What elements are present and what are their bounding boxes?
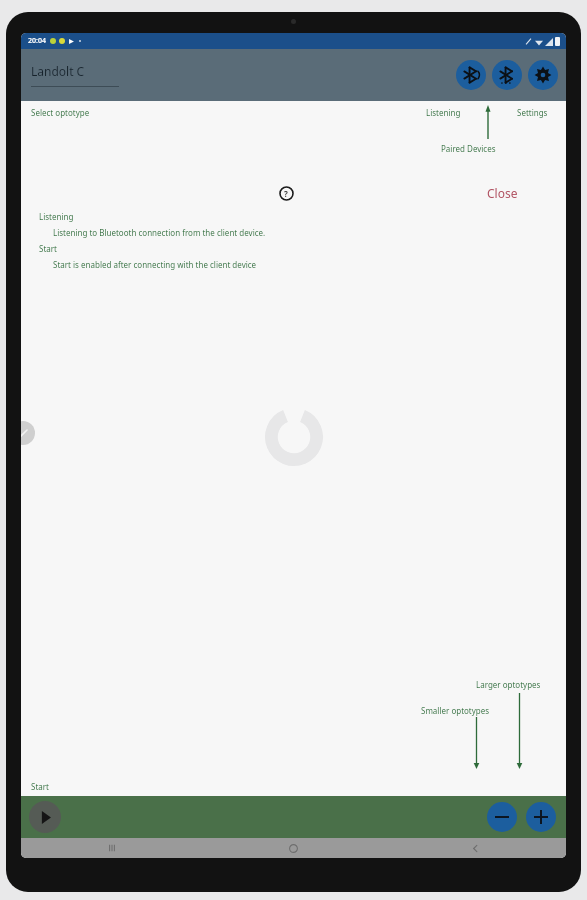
staticText: Listening to Bluetooth connection from t… xyxy=(53,227,266,238)
button[interactable]: Close xyxy=(483,183,522,203)
staticText: Start is enabled after connecting with t… xyxy=(53,259,257,270)
button[interactable]: Recents xyxy=(102,838,122,858)
staticText: Larger optotypes xyxy=(476,679,541,690)
button[interactable]: Listening for Bluetooth connection xyxy=(456,60,486,90)
button[interactable]: Settings xyxy=(528,60,558,90)
button[interactable]: Back xyxy=(465,838,485,858)
staticText: Landolt C xyxy=(31,63,85,79)
staticText: Start xyxy=(39,243,57,254)
staticText: ? xyxy=(284,188,288,199)
staticText: Paired Devices xyxy=(441,143,496,154)
staticText: 20:04 xyxy=(28,36,46,46)
staticText: Listening xyxy=(426,107,461,118)
staticText: Settings xyxy=(517,107,548,118)
staticText: Smaller optotypes xyxy=(421,705,490,716)
button[interactable]: Paired Devices xyxy=(492,60,522,90)
button[interactable]: Edit xyxy=(21,421,35,445)
button[interactable]: Start xyxy=(29,801,61,833)
staticText: Listening xyxy=(39,211,74,222)
staticText: Start xyxy=(31,781,49,792)
button[interactable]: Home xyxy=(283,838,303,858)
button[interactable]: Help xyxy=(276,183,296,203)
button[interactable]: Smaller optotypes xyxy=(487,802,517,832)
staticText: Select optotype xyxy=(31,107,90,118)
staticText: Close xyxy=(487,185,518,201)
button[interactable]: Larger optotypes xyxy=(526,802,556,832)
